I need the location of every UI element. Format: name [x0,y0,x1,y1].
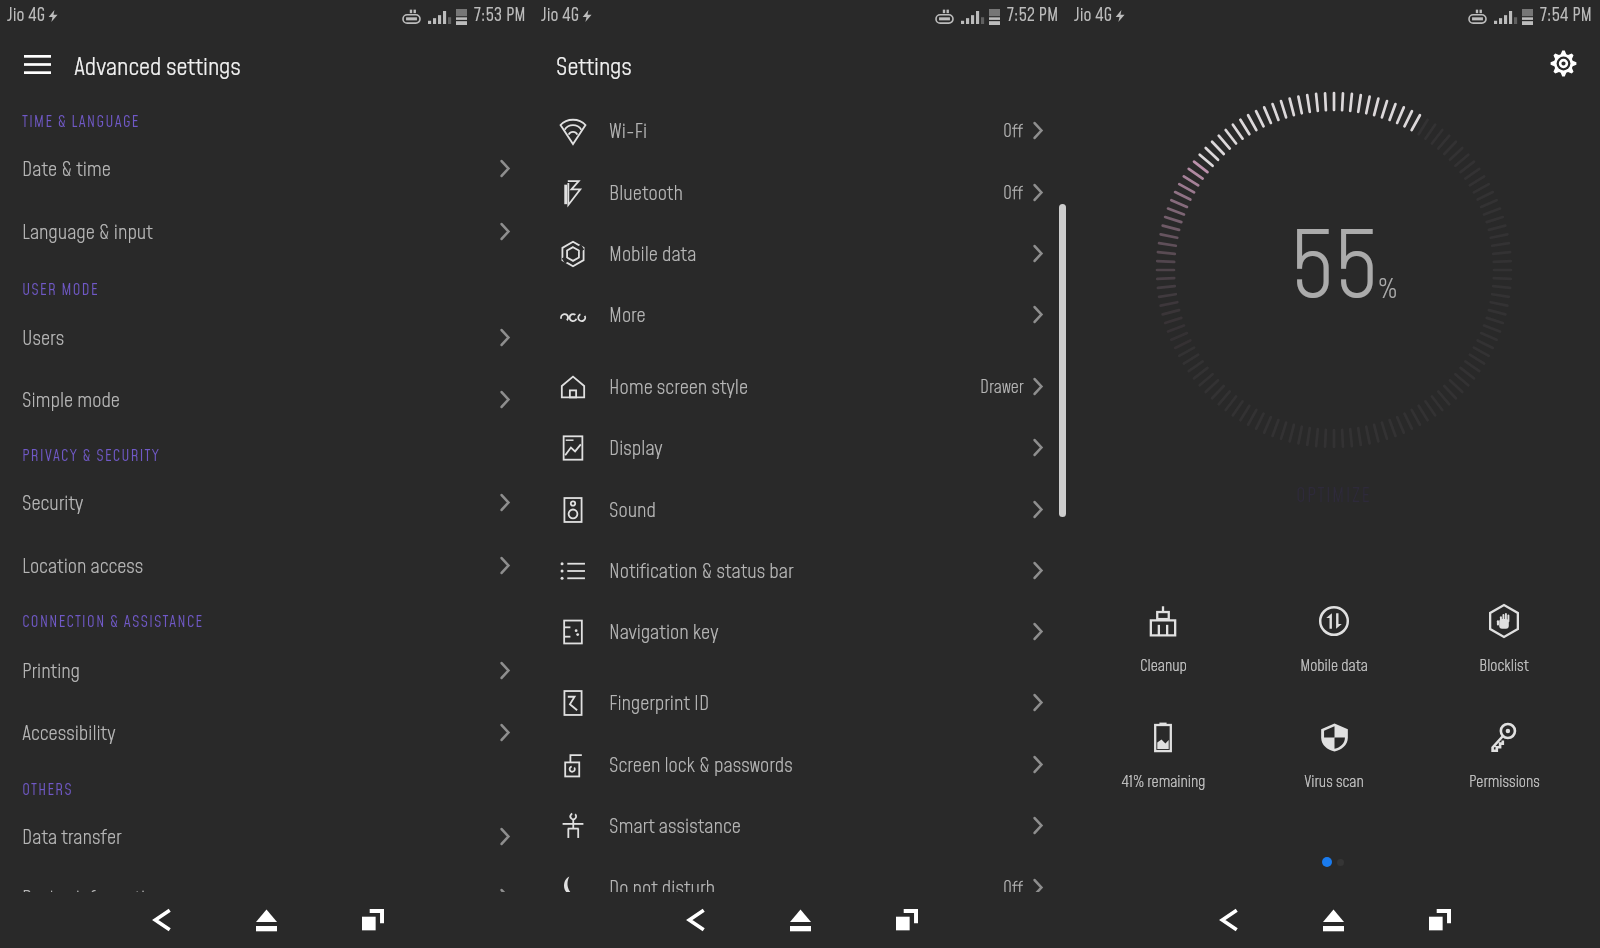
staticText: Blocklist [1479,656,1529,678]
staticText: Advanced settings [74,51,241,84]
staticText: OTHERS [22,779,73,801]
staticText: Language & input [22,219,153,247]
staticText: Home screen style [609,374,748,402]
staticText: Settings [556,51,632,84]
button[interactable]: Recents [349,896,397,944]
staticText: Jio 4G [541,4,580,28]
staticText: 41% remaining [1121,772,1206,794]
staticText: % [1378,271,1398,309]
staticText: Accessibility [22,720,116,748]
staticText: Drawer [980,376,1024,400]
staticText: Cleanup [1140,656,1187,678]
staticText: 7:54 PM [1540,4,1592,28]
button[interactable]: Date & time [0,137,534,199]
button[interactable]: Permissions [1448,719,1560,795]
button[interactable]: Language & input [0,200,534,262]
staticText: Sound [609,497,657,525]
staticText: Notification & status bar [609,558,794,586]
button[interactable]: Home [776,896,824,944]
staticText: Jio 4G [7,4,46,28]
button[interactable]: Fingerprint ID [534,672,1067,733]
staticText: Display [609,435,663,463]
button[interactable]: Display [534,417,1067,478]
button[interactable]: Security [0,471,534,533]
button[interactable]: Navigation key [534,601,1067,662]
button[interactable]: Accessibility [0,701,534,763]
button[interactable]: Screen lock & passwords [534,734,1067,795]
staticText: Device information [22,885,164,913]
staticText: OPTIMIZE [1296,483,1372,509]
button[interactable]: Recents [883,896,931,944]
staticText: Users [22,325,65,353]
button[interactable]: Back [672,896,720,944]
button[interactable]: Wi-Fi [534,100,1067,161]
staticText: Fingerprint ID [609,690,710,718]
staticText: More [609,302,646,330]
button[interactable]: Users [0,306,534,368]
staticText: Location access [22,553,144,581]
button[interactable]: Back [1205,896,1253,944]
button[interactable]: Smart assistance [534,795,1067,856]
staticText: Do not disturb [609,875,715,903]
staticText: Printing [22,658,80,686]
button[interactable]: Data transfer [0,805,534,867]
button[interactable]: Simple mode [0,368,534,430]
button[interactable]: Location access [0,534,534,596]
button[interactable]: Printing [0,639,534,701]
staticText: Wi-Fi [609,118,648,146]
staticText: Mobile data [1300,656,1368,678]
staticText: PRIVACY & SECURITY [22,445,160,467]
button[interactable]: Home [1309,896,1357,944]
staticText: 7:53 PM [474,4,526,28]
staticText: Security [22,490,84,518]
button[interactable]: Notification & status bar [534,540,1067,601]
button[interactable]: Device information [0,866,534,928]
staticText: 7:52 PM [1007,4,1059,28]
button[interactable]: Back [138,896,186,944]
staticText: Virus scan [1304,772,1364,794]
staticText: Navigation key [609,619,719,647]
button[interactable]: Blocklist [1448,603,1560,679]
button[interactable]: Recents [1416,896,1464,944]
button[interactable]: Cleanup [1107,603,1219,679]
button[interactable]: Mobile data [534,223,1067,284]
button[interactable]: Do not disturb [534,857,1067,918]
staticText: Off [1003,877,1024,901]
staticText: Permissions [1469,772,1540,794]
staticText: Bluetooth [609,180,683,208]
button[interactable]: Home [242,896,290,944]
staticText: Date & time [22,156,111,184]
staticText: Off [1003,182,1024,206]
button[interactable]: Home screen style [534,356,1067,417]
button[interactable]: Sound [534,479,1067,540]
staticText: Off [1003,120,1024,144]
button[interactable]: Menu [12,39,62,89]
staticText: 55 [1290,208,1379,298]
staticText: Jio 4G [1074,4,1113,28]
button[interactable]: More [534,284,1067,345]
button[interactable]: 41% remaining [1107,719,1219,795]
staticText: Screen lock & passwords [609,752,793,780]
button[interactable]: Mobile data [1278,603,1390,679]
staticText: Mobile data [609,241,697,269]
staticText: TIME & LANGUAGE [22,111,140,133]
button[interactable]: Virus scan [1278,719,1390,795]
staticText: USER MODE [22,279,99,301]
staticText: Data transfer [22,824,122,852]
staticText: Simple mode [22,387,120,415]
button[interactable]: Bluetooth [534,162,1067,223]
staticText: Smart assistance [609,813,741,841]
button[interactable]: Settings [1541,41,1585,85]
staticText: CONNECTION & ASSISTANCE [22,611,204,633]
